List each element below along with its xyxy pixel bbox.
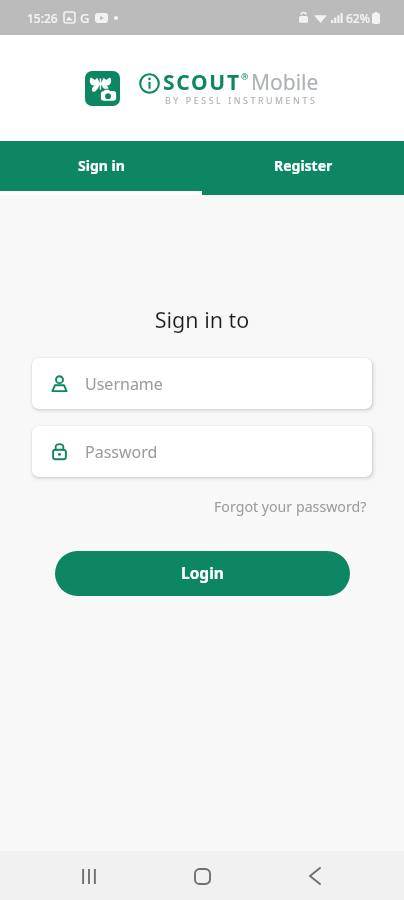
button[interactable]: Recent apps	[65, 852, 113, 900]
staticText: SCOUT	[163, 68, 241, 97]
button[interactable]: Username	[32, 358, 372, 409]
staticText: Login	[181, 562, 224, 583]
staticText: Mobile	[251, 68, 319, 97]
staticText: G	[80, 9, 90, 27]
button[interactable]: Password	[32, 426, 372, 477]
button[interactable]: Register	[202, 141, 404, 195]
staticText: Register	[274, 156, 333, 175]
button[interactable]: Home	[178, 852, 226, 900]
staticText: ®	[241, 70, 249, 82]
staticText: Username	[85, 373, 163, 395]
staticText: Sign in	[78, 156, 125, 175]
button[interactable]: Back	[291, 852, 339, 900]
button[interactable]: Forgot your password?	[210, 493, 371, 520]
staticText: 15:26	[27, 10, 58, 26]
button[interactable]: Sign in	[0, 141, 202, 195]
staticText: BY PESSL INSTRUMENTS	[165, 95, 318, 107]
staticText: Password	[85, 441, 158, 463]
button[interactable]: Login	[55, 551, 350, 596]
staticText: 62%	[346, 10, 370, 26]
staticText: Sign in to	[0, 305, 404, 334]
